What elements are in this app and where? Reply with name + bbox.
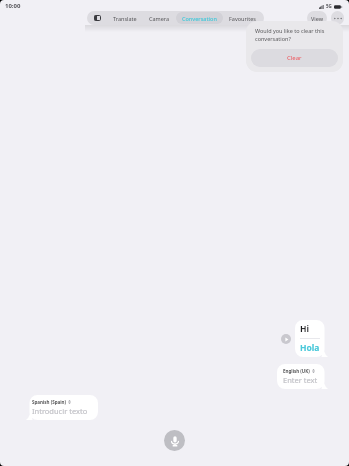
staticText: View — [311, 15, 324, 22]
staticText: Would you like to clear this conversatio… — [255, 27, 334, 43]
button[interactable]: Microphone — [164, 430, 185, 451]
button[interactable]: Spanish (Spain) — [32, 399, 88, 416]
button[interactable]: Translate — [113, 12, 137, 24]
button[interactable]: Sidebar — [87, 11, 107, 25]
staticText: Introducir texto — [32, 406, 88, 416]
button[interactable]: View — [307, 11, 327, 25]
staticText: Favourites — [229, 15, 256, 22]
button[interactable]: Clear — [251, 49, 338, 67]
staticText: Conversation — [182, 15, 217, 22]
button[interactable]: More options — [331, 11, 344, 25]
staticText: Hi — [300, 323, 310, 335]
staticText: 10:00 — [5, 2, 21, 10]
staticText: Clear — [287, 54, 302, 62]
staticText: Translate — [113, 15, 137, 22]
staticText: 5G — [326, 3, 332, 9]
button[interactable]: Favourites — [229, 12, 256, 24]
staticText: Hola — [300, 342, 320, 354]
button[interactable]: English (UK) — [283, 368, 318, 385]
staticText: Enter text — [283, 375, 318, 385]
button[interactable]: Play translation — [281, 334, 291, 344]
button[interactable]: Conversation — [182, 12, 217, 24]
staticText: Camera — [149, 15, 170, 22]
staticText: English (UK) — [283, 368, 310, 374]
button[interactable]: Hi — [300, 323, 320, 354]
button[interactable]: Camera — [149, 12, 170, 24]
staticText: Spanish (Spain) — [32, 399, 66, 405]
